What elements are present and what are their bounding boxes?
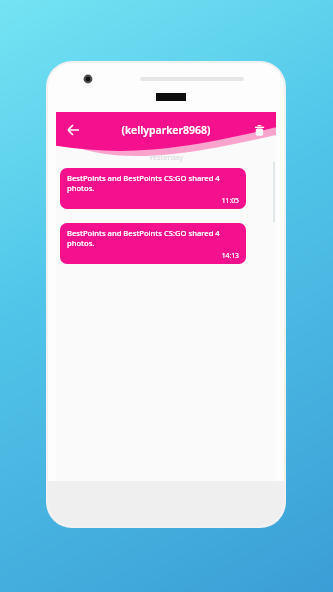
staticText: 11:05 (67, 196, 239, 205)
button[interactable]: BestPoints and BestPoints CS:GO shared 4… (60, 168, 246, 209)
staticText: (kellyparker8968) (90, 123, 242, 137)
staticText: BestPoints and BestPoints CS:GO shared 4… (67, 228, 239, 248)
button[interactable]: Delete conversation (242, 112, 276, 148)
staticText: Yesterday (56, 152, 276, 162)
button[interactable]: BestPoints and BestPoints CS:GO shared 4… (60, 223, 246, 264)
staticText: 14:13 (67, 251, 239, 260)
staticText: BestPoints and BestPoints CS:GO shared 4… (67, 173, 239, 193)
button[interactable]: Back (56, 112, 90, 148)
